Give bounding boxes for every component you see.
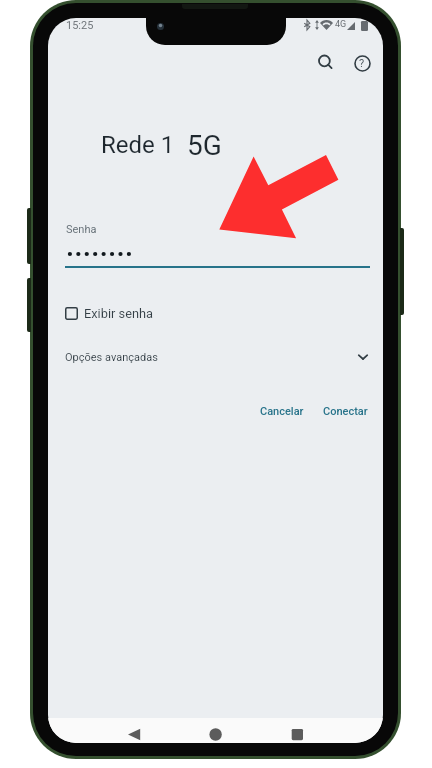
staticText: Rede 1 xyxy=(101,131,175,159)
staticText: Exibir senha xyxy=(84,306,154,321)
staticText: Opções avançadas xyxy=(65,351,357,364)
staticText: 5G xyxy=(187,129,222,162)
button[interactable]: Back xyxy=(116,718,152,743)
button[interactable]: Help xyxy=(343,44,381,82)
button[interactable]: Opções avançadas xyxy=(65,342,369,372)
staticText: ? xyxy=(359,57,365,70)
staticText: 4G xyxy=(335,19,347,30)
button[interactable]: Cancelar xyxy=(260,405,304,418)
staticText: Cancelar xyxy=(260,405,304,418)
button[interactable]: Conectar xyxy=(323,405,368,418)
staticText: Senha xyxy=(66,223,97,236)
staticText: Conectar xyxy=(323,405,368,418)
button[interactable]: Search xyxy=(305,44,343,82)
button[interactable]: Exibir senha xyxy=(65,299,154,327)
staticText: 15:25 xyxy=(66,19,94,32)
button[interactable]: Home xyxy=(198,718,234,743)
button[interactable]: Recents xyxy=(279,718,315,743)
